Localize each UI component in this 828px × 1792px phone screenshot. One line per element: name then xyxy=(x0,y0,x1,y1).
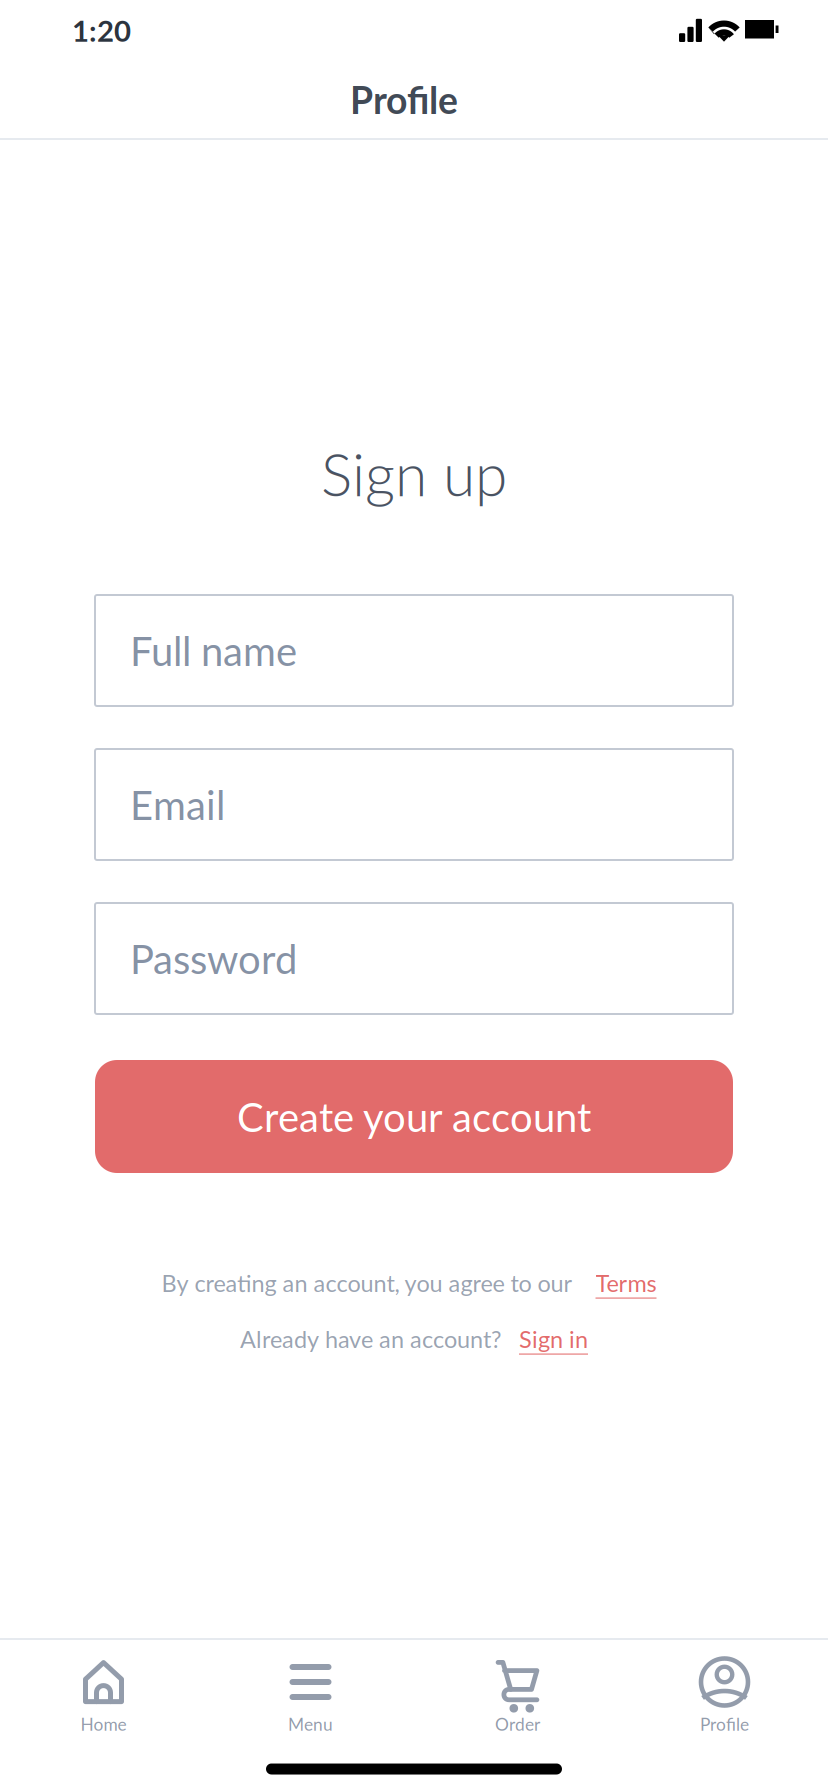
button[interactable]: Sign in xyxy=(519,1325,588,1353)
staticText: Profile xyxy=(350,77,458,122)
staticText: Full name xyxy=(130,626,297,674)
button[interactable]: Create your account xyxy=(95,1060,733,1173)
button[interactable]: Order xyxy=(414,1640,621,1746)
button[interactable]: Email xyxy=(95,749,733,860)
button[interactable]: Password xyxy=(95,903,733,1014)
button[interactable]: Profile xyxy=(621,1640,828,1746)
staticText: Order xyxy=(495,1714,540,1734)
staticText: 1:20 xyxy=(72,13,131,48)
staticText: Menu xyxy=(288,1714,333,1734)
staticText: Home xyxy=(80,1714,126,1734)
staticText: Profile xyxy=(700,1714,749,1734)
staticText: Email xyxy=(130,780,225,828)
staticText: Sign in xyxy=(519,1325,588,1353)
button[interactable]: Menu xyxy=(207,1640,414,1746)
staticText: Terms xyxy=(595,1269,656,1297)
staticText: Password xyxy=(130,934,297,982)
staticText: Already have an account? xyxy=(240,1325,502,1353)
staticText: Sign up xyxy=(321,438,507,509)
button[interactable]: Home xyxy=(0,1640,207,1746)
staticText: By creating an account, you agree to our xyxy=(161,1269,572,1297)
button[interactable]: Full name xyxy=(95,595,733,706)
staticText: Create your account xyxy=(237,1092,591,1140)
button[interactable]: Terms xyxy=(595,1269,656,1297)
